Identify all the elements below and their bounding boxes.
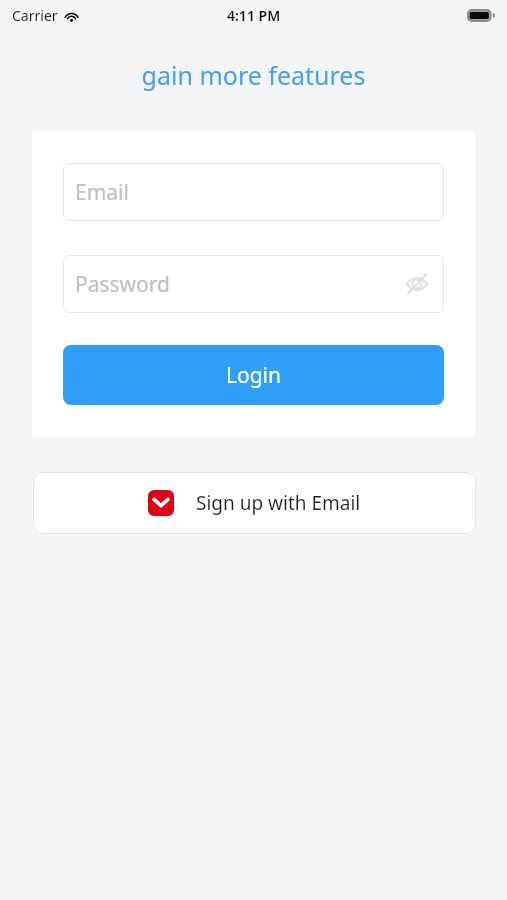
staticText: gain more features [0, 58, 507, 92]
button[interactable]: Password [63, 255, 444, 313]
staticText: Sign up with Email [196, 490, 361, 516]
staticText: Carrier [12, 6, 58, 25]
staticText: Email [75, 178, 129, 207]
button[interactable]: Show password [402, 269, 432, 299]
staticText: Login [226, 361, 282, 390]
staticText: 4:11 PM [227, 6, 281, 25]
button[interactable]: Login [63, 345, 444, 405]
button[interactable]: Email [63, 163, 444, 221]
staticText: Password [75, 270, 170, 299]
button[interactable]: Sign up with Email [33, 472, 476, 534]
